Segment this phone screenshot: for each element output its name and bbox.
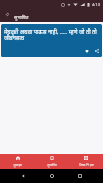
staticText: 4:13: [92, 2, 100, 7]
staticText: सुभाषित: [47, 163, 57, 167]
button[interactable]: Favorite: [82, 46, 91, 55]
button[interactable]: Back: [18, 171, 28, 181]
staticText: मुखपृष्ठ: [13, 163, 22, 167]
button[interactable]: सुभाषित: [35, 154, 69, 169]
button[interactable]: विषय नि हवा: [69, 154, 103, 169]
button[interactable]: Home: [47, 171, 57, 181]
button[interactable]: मेघदृष्टी अथवा पाऊस नाही, ..... म्हणे जो…: [1, 24, 102, 57]
button[interactable]: Refresh: [3, 10, 11, 18]
staticText: सुभाषित: [14, 14, 29, 20]
staticText: मेघदृष्टी अथवा पाऊस नाही, ..... म्हणे जो…: [4, 28, 99, 42]
button[interactable]: Share: [92, 46, 101, 55]
button[interactable]: Recents: [75, 171, 85, 181]
button[interactable]: मुखपृष्ठ: [0, 154, 35, 169]
staticText: विषय नि हवा: [79, 163, 94, 167]
